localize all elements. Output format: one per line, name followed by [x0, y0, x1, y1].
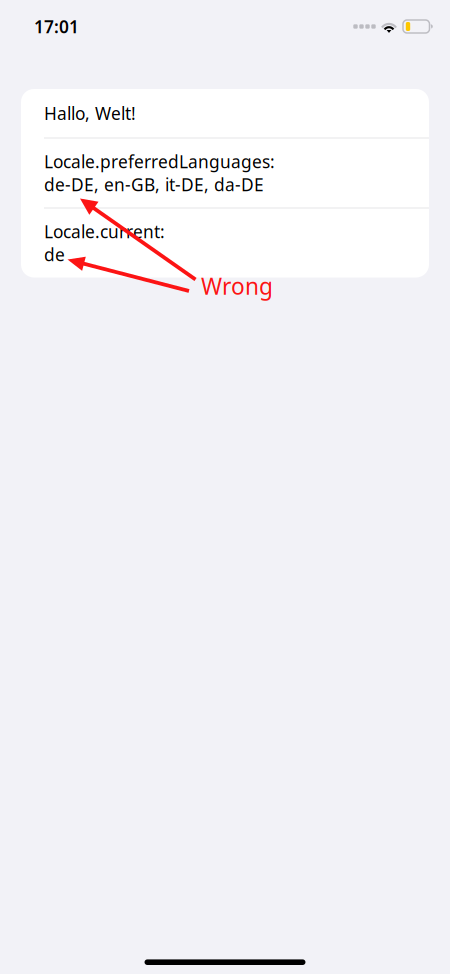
staticText: Locale.preferredLanguages: [44, 150, 275, 173]
staticText: Wrong [201, 271, 273, 301]
staticText: de [44, 243, 65, 266]
staticText: de-DE, en-GB, it-DE, da-DE [44, 173, 264, 196]
staticText: Locale.current: [44, 220, 165, 243]
button[interactable]: Locale.preferredLanguages: [21, 138, 429, 207]
staticText: Hallo, Welt! [44, 102, 136, 125]
staticText: 17:01 [34, 15, 79, 38]
button[interactable]: Hallo, Welt! [21, 89, 429, 137]
button[interactable]: Locale.current: [21, 208, 429, 277]
